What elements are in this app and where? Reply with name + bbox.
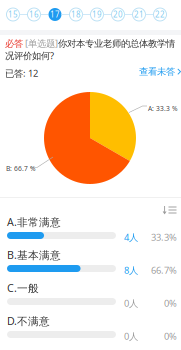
button[interactable]: 18 xyxy=(69,8,82,21)
staticText: 33.3% xyxy=(151,231,177,243)
button[interactable]: 20 xyxy=(111,8,124,21)
staticText: 19 xyxy=(92,9,102,20)
staticText: 必答 [单选题]你对本专业老师的总体教学情况评价如何? xyxy=(5,37,175,62)
staticText: C.一般 xyxy=(7,281,39,295)
staticText: D.不满意 xyxy=(7,314,50,328)
staticText: 0% xyxy=(164,297,177,309)
staticText: 4人 xyxy=(124,231,138,243)
staticText: B: 66.7 % xyxy=(6,164,36,173)
staticText: B.基本满意 xyxy=(7,248,61,262)
staticText: 21 xyxy=(134,9,144,20)
staticText: 17 xyxy=(50,9,60,20)
staticText: 已答: 12 xyxy=(5,67,38,79)
button[interactable]: 19 xyxy=(90,8,103,21)
button[interactable]: 15 xyxy=(6,8,19,21)
staticText: 0人 xyxy=(124,297,138,309)
staticText: 8人 xyxy=(124,264,138,276)
staticText: A: 33.3 % xyxy=(148,104,178,113)
button[interactable]: Sort xyxy=(160,203,181,217)
staticText: 66.7% xyxy=(151,264,177,276)
staticText: 22 xyxy=(155,9,165,20)
staticText: 20 xyxy=(113,9,123,20)
staticText: 18 xyxy=(71,9,81,20)
button[interactable]: 21 xyxy=(132,8,145,21)
staticText: 16 xyxy=(29,9,39,20)
staticText: 0人 xyxy=(124,330,138,342)
button[interactable]: 22 xyxy=(153,8,166,21)
staticText: 15 xyxy=(8,9,18,20)
button[interactable]: 17 xyxy=(48,8,61,21)
button[interactable]: 16 xyxy=(27,8,40,21)
staticText: 查看未答 xyxy=(139,66,175,77)
staticText: A.非常满意 xyxy=(7,215,61,229)
button[interactable]: 查看未答 xyxy=(134,64,181,79)
staticText: 0% xyxy=(164,330,177,342)
